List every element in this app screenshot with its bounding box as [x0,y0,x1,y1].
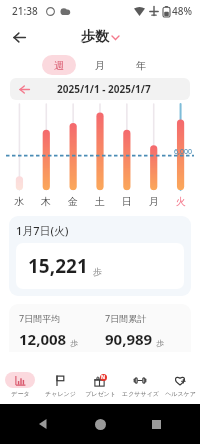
staticText: 2025/1/1 - 2025/1/7 [57,82,151,96]
staticText: 月 [149,195,159,208]
button[interactable]: エクササイズ [120,366,160,404]
button[interactable]: 年 [124,55,158,75]
button[interactable]: 7日間平均 [9,304,191,352]
button[interactable]: Home [88,412,112,436]
staticText: 48% [172,4,192,18]
staticText: 歩数 [81,28,109,46]
button[interactable]: 日 [113,192,140,210]
button[interactable]: 火 [167,192,194,210]
staticText: 月 [95,59,105,72]
staticText: 金 [68,195,78,208]
button[interactable]: Back [32,412,56,436]
staticText: 7日間平均 [19,312,61,324]
staticText: チャレンジ [45,390,76,398]
button[interactable]: 1月7日(火) [9,216,191,296]
button[interactable]: 木 [32,192,59,210]
staticText: 土 [95,195,105,208]
staticText: N [101,374,106,381]
staticText: 年 [136,59,146,72]
button[interactable]: 土 [86,192,113,210]
button[interactable]: データ [0,366,40,404]
staticText: 歩 [156,338,164,348]
button[interactable]: Previous week [14,79,34,99]
button[interactable]: 週 [42,55,76,75]
button[interactable]: N [80,366,120,404]
staticText: 歩 [70,338,78,348]
staticText: 木 [41,195,51,208]
button[interactable]: 歩数 [77,26,123,48]
button[interactable]: 月 [83,55,117,75]
button[interactable]: Recents [144,412,168,436]
staticText: プレゼント [85,390,116,398]
staticText: ヘルスケア [165,390,196,398]
staticText: 15,221 [28,253,88,279]
button[interactable]: 水 [6,192,32,210]
staticText: 1月7日(火) [16,223,69,238]
button[interactable]: ヘルスケア [160,366,200,404]
staticText: 歩 [93,266,102,277]
button[interactable]: Back [6,24,32,50]
staticText: 週 [54,59,64,72]
staticText: 12,008 [19,329,67,349]
button[interactable]: 金 [59,192,86,210]
staticText: 水 [14,195,24,208]
staticText: データ [11,390,30,398]
staticText: エクササイズ [122,390,159,398]
staticText: 火 [176,195,186,208]
staticText: 日 [122,195,132,208]
staticText: 90,989 [105,329,153,349]
staticText: 6,000 [174,147,192,157]
staticText: 7日間累計 [105,312,147,324]
button[interactable]: 月 [140,192,167,210]
staticText: 21:38 [12,4,38,18]
button[interactable]: チャレンジ [40,366,80,404]
